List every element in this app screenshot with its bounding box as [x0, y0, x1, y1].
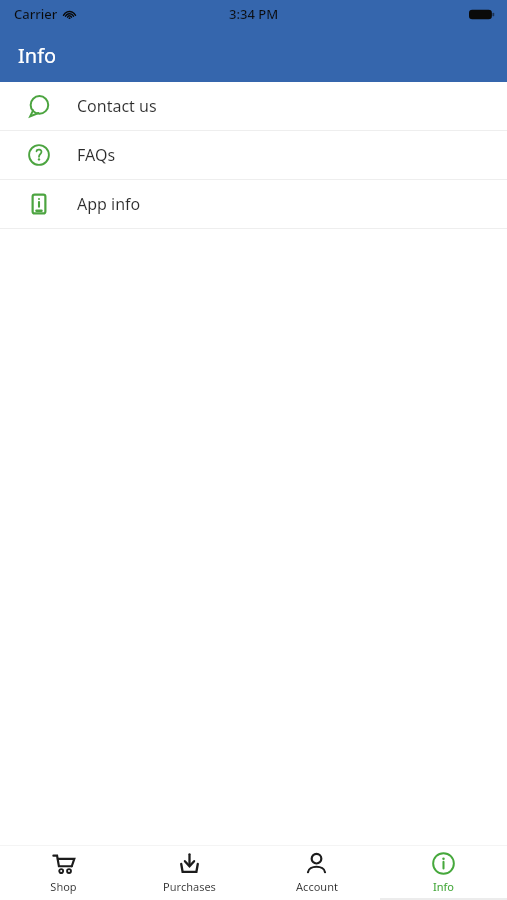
staticText: App info [77, 193, 141, 215]
button[interactable]: Purchases [126, 845, 253, 900]
staticText: Contact us [77, 95, 157, 117]
button[interactable]: FAQs [0, 131, 507, 179]
staticText: 3:34 PM [229, 5, 279, 23]
staticText: Info [433, 879, 454, 894]
staticText: FAQs [77, 144, 116, 166]
button[interactable]: Contact us [0, 82, 507, 130]
button[interactable]: Info [380, 845, 507, 900]
staticText: Carrier [14, 5, 58, 23]
button[interactable]: Account [253, 845, 380, 900]
staticText: Shop [50, 879, 77, 894]
staticText: Purchases [163, 879, 216, 894]
button[interactable]: App info [0, 180, 507, 228]
staticText: Info [18, 42, 57, 69]
button[interactable]: Shop [0, 845, 126, 900]
staticText: Account [296, 879, 338, 894]
